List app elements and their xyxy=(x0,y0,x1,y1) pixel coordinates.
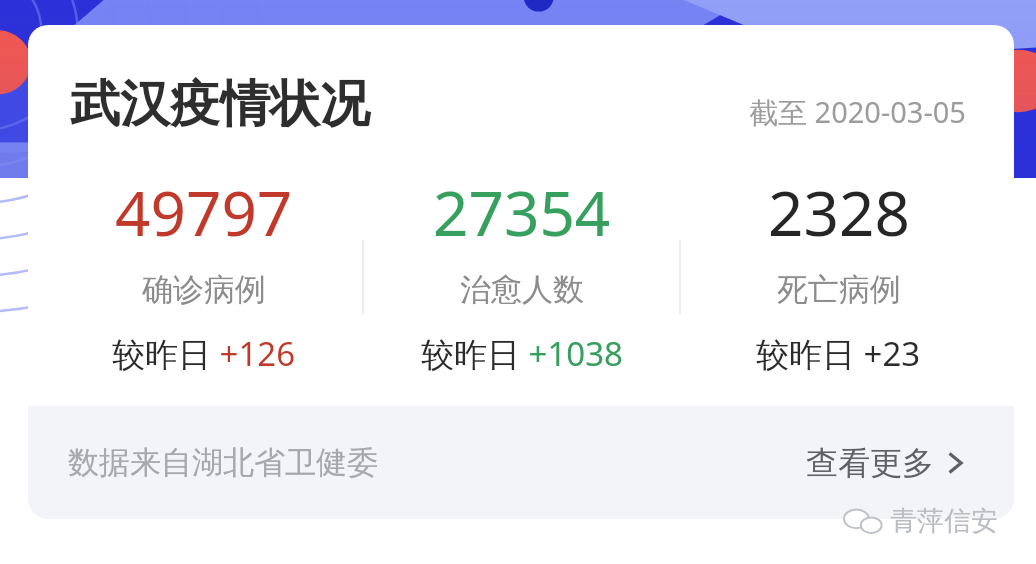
staticText: 较昨日 +1038 xyxy=(421,331,623,376)
button[interactable]: 49797 xyxy=(46,170,362,376)
other: View more xyxy=(944,448,966,478)
staticText: 较昨日 +126 xyxy=(112,331,296,376)
staticText: 确诊病例 xyxy=(142,270,266,309)
button[interactable]: 数据来自湖北省卫健委 xyxy=(28,406,1014,519)
staticText: 死亡病例 xyxy=(777,270,901,309)
staticText: 27354 xyxy=(433,170,611,254)
button[interactable]: 27354 xyxy=(364,170,679,376)
button[interactable]: 2328 xyxy=(681,170,996,376)
staticText: 2328 xyxy=(768,170,910,254)
staticText: 数据来自湖北省卫健委 xyxy=(68,443,378,482)
button[interactable]: 查看更多 xyxy=(806,443,966,483)
staticText: 治愈人数 xyxy=(460,270,584,309)
staticText: 查看更多 xyxy=(806,443,934,483)
staticText: 较昨日 +23 xyxy=(756,331,921,376)
staticText: 青萍信安 xyxy=(890,504,998,538)
staticText: 截至 2020-03-05 xyxy=(749,92,966,132)
staticText: 武汉疫情状况 xyxy=(70,73,370,136)
staticText: 49797 xyxy=(115,170,293,254)
